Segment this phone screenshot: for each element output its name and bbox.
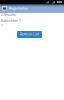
staticText: Subscriber 1 [1, 19, 21, 23]
button[interactable]: Refresh List [17, 31, 42, 38]
staticText: Registration [9, 6, 28, 11]
staticText: Refresh List [20, 33, 39, 36]
staticText: 2 Results [1, 13, 16, 17]
staticText: 1 [1, 24, 3, 28]
